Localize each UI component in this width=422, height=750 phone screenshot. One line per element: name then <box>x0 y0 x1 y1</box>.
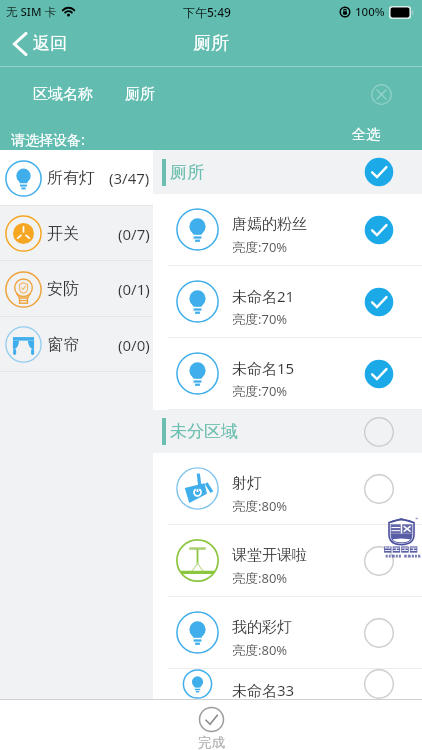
button[interactable]: 未命名15 <box>153 338 422 410</box>
staticText: (0/7) <box>118 224 150 244</box>
button[interactable]: 我的彩灯 <box>153 597 422 669</box>
staticText: 亮度:80% <box>232 641 288 659</box>
button[interactable]: 开关 <box>0 206 153 261</box>
other: Toggle 未命名21 <box>364 287 394 317</box>
other: Toggle 未命名33 <box>364 669 394 699</box>
staticText: 亮度:70% <box>232 382 288 400</box>
button[interactable]: 课堂开课啦 <box>153 525 422 597</box>
staticText: 区域名称 <box>33 85 93 104</box>
staticText: 所有灯 <box>47 168 95 188</box>
other: Deselect group <box>364 157 394 187</box>
staticText: 课堂开课啦 <box>232 546 307 565</box>
staticText: 厕所 <box>125 85 155 104</box>
staticText: 亮度:80% <box>232 569 288 587</box>
button[interactable]: 全选 <box>319 115 411 150</box>
staticText: 厕所 <box>170 162 204 183</box>
staticText: 亮度:70% <box>232 238 288 256</box>
staticText: 100% <box>355 4 385 20</box>
staticText: (0/1) <box>118 279 150 299</box>
staticText: 射灯 <box>232 474 262 493</box>
staticText: 厕所 <box>193 32 229 55</box>
staticText: 开关 <box>47 224 79 244</box>
staticText: 返回 <box>33 33 67 54</box>
button[interactable]: Clear name <box>366 79 396 109</box>
staticText: 全选 <box>352 126 380 144</box>
other: Toggle 唐嫣的粉丝 <box>364 215 394 245</box>
staticText: 未命名21 <box>232 286 295 306</box>
button[interactable]: 未命名21 <box>153 266 422 338</box>
other: Toggle 未命名15 <box>364 359 394 389</box>
staticText: 未命名15 <box>232 358 295 378</box>
staticText: 唐嫣的粉丝 <box>232 215 307 234</box>
button[interactable]: 安防 <box>0 261 153 317</box>
other: Toggle 射灯 <box>364 474 394 504</box>
staticText: 亮度:80% <box>232 497 288 515</box>
staticText: 未命名33 <box>232 680 295 699</box>
button[interactable]: 完成 <box>166 707 257 750</box>
other: Toggle 我的彩灯 <box>364 618 394 648</box>
staticText: 下午5:49 <box>183 4 231 20</box>
staticText: 我的彩灯 <box>232 618 292 637</box>
staticText: 未分区域 <box>170 421 238 442</box>
button[interactable]: 未命名33 <box>153 669 422 699</box>
button[interactable]: 射灯 <box>153 453 422 525</box>
button[interactable]: 未分区域 <box>153 410 422 453</box>
button[interactable]: 返回 <box>0 22 79 65</box>
staticText: (3/47) <box>109 168 150 188</box>
button[interactable]: 厕所 <box>153 150 422 194</box>
staticText: (0/0) <box>118 335 150 355</box>
staticText: 亮度:70% <box>232 310 288 328</box>
staticText: 完成 <box>198 734 225 750</box>
other: Select group <box>364 417 394 447</box>
button[interactable]: 窗帘 <box>0 317 153 372</box>
button[interactable]: 所有灯 <box>0 150 153 206</box>
staticText: 无 SIM 卡 <box>6 4 56 20</box>
staticText: 请选择设备: <box>11 130 85 149</box>
staticText: 安防 <box>47 279 79 299</box>
staticText: 窗帘 <box>47 335 79 355</box>
button[interactable]: 唐嫣的粉丝 <box>153 194 422 266</box>
other: Toggle 课堂开课啦 <box>364 546 394 576</box>
